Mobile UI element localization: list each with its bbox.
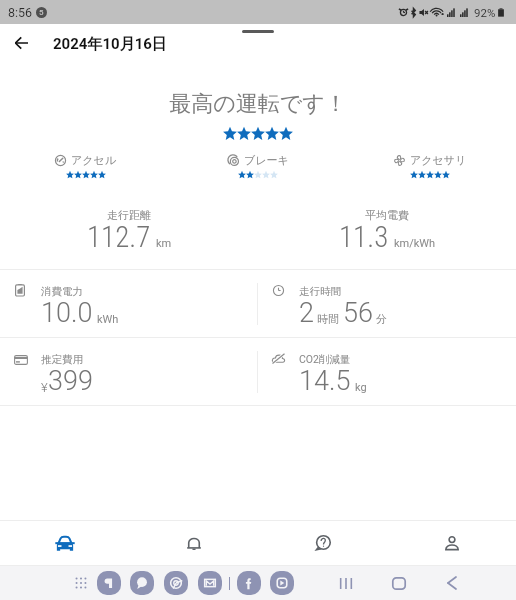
button[interactable]: アクセル [0,153,172,179]
button[interactable]: CO2削減量 [258,338,516,405]
button[interactable]: Messages [130,571,154,595]
button[interactable]: Phone [97,571,121,595]
button[interactable]: All apps [73,575,89,591]
button[interactable]: Back [4,26,38,60]
staticText: ¥ [41,380,48,395]
button[interactable]: 消費電力 [0,270,257,337]
button[interactable]: 推定費用 [0,338,257,405]
staticText: kWh [97,313,119,326]
staticText: CO2削減量 [299,353,351,366]
button[interactable]: Facebook [237,571,261,595]
staticText: 11.3 [339,220,389,254]
button[interactable]: 走行時間 [258,270,516,337]
button[interactable]: ブレーキ [172,153,344,179]
staticText: 走行時間 [299,285,341,298]
staticText: 時間 [317,312,339,326]
staticText: 分 [376,312,387,326]
staticText: km/kWh [394,237,436,250]
button[interactable]: Help [258,521,387,565]
button[interactable]: Recents [326,568,366,598]
staticText: 2 [299,297,314,329]
button[interactable]: Back [432,568,472,598]
staticText: 最高の運転です！ [0,90,516,118]
staticText: 10.0 [41,297,93,329]
button[interactable]: Profile [387,521,516,565]
button[interactable]: アクセサリ [344,153,516,179]
button[interactable]: 走行距離 [0,208,258,256]
staticText: ブレーキ [244,153,289,167]
staticText: 走行距離 [107,208,151,222]
staticText: 56 [343,297,373,329]
staticText: 399 [48,365,93,397]
staticText: 112.7 [87,220,151,254]
staticText: アクセサリ [410,153,467,167]
button[interactable]: Chrome [164,571,188,595]
staticText: 14.5 [299,365,351,397]
button[interactable]: Notifications [129,521,258,565]
staticText: アクセル [71,153,117,167]
staticText: 消費電力 [41,285,83,298]
staticText: 8:56 [8,5,33,20]
button[interactable]: App [270,571,294,595]
staticText: km [156,237,172,250]
staticText: kg [355,381,367,394]
staticText: 平均電費 [365,208,409,222]
button[interactable]: Trips [0,521,129,565]
staticText: 92% [474,6,496,19]
staticText: 2024年10月16日 [53,35,167,54]
staticText: 5 [39,8,44,17]
staticText: 推定費用 [41,353,83,366]
button[interactable]: Gmail [198,571,222,595]
button[interactable]: 平均電費 [258,208,516,256]
button[interactable]: Home [379,568,419,598]
